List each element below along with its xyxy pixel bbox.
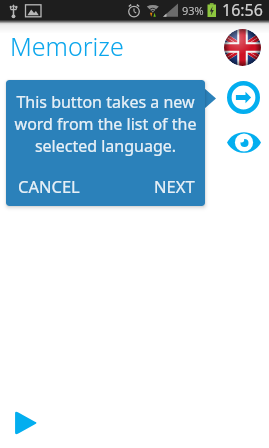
button[interactable]: Select language: [224, 29, 261, 66]
button[interactable]: NEXT: [142, 172, 205, 206]
staticText: Memorize: [10, 29, 124, 63]
staticText: This button takes a new word from the li…: [12, 91, 199, 157]
button[interactable]: Show translation: [227, 131, 261, 154]
staticText: NEXT: [154, 175, 195, 197]
staticText: 16:56: [222, 0, 263, 19]
button[interactable]: Play pronunciation: [14, 411, 38, 435]
button[interactable]: CANCEL: [6, 172, 90, 206]
staticText: CANCEL: [18, 175, 80, 197]
staticText: 93%: [182, 3, 204, 18]
button[interactable]: New word: [227, 81, 260, 114]
